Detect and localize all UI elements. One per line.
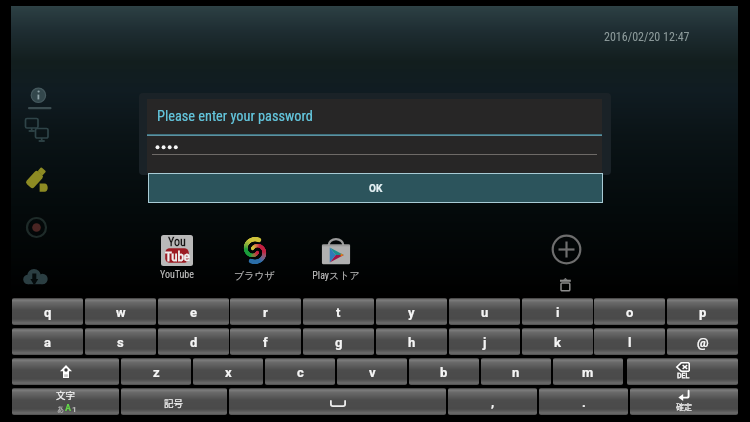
button[interactable]: i [522, 298, 593, 325]
staticText: p [699, 305, 707, 320]
staticText: @ [697, 335, 709, 350]
button[interactable]: v [337, 358, 407, 385]
staticText: h [408, 335, 416, 350]
staticText: , [491, 395, 495, 410]
staticText: c [297, 365, 304, 380]
staticText: 記号 [164, 396, 184, 410]
button[interactable]: Add [551, 234, 582, 265]
staticText: 2016/02/20 12:47 [604, 30, 690, 44]
button[interactable]: k [522, 328, 593, 355]
button[interactable]: j [449, 328, 520, 355]
button[interactable]: Network [24, 117, 52, 143]
button[interactable]: m [553, 358, 623, 385]
button[interactable]: x [193, 358, 263, 385]
button[interactable]: l [594, 328, 665, 355]
button[interactable]: d [158, 328, 229, 355]
staticText: n [512, 365, 520, 380]
button[interactable]: . [539, 388, 628, 415]
button[interactable]: o [594, 298, 665, 325]
button[interactable]: Enter [630, 388, 738, 415]
staticText: e [190, 305, 198, 320]
button[interactable]: ブラウザ [218, 231, 290, 285]
button[interactable]: @ [667, 328, 738, 355]
button[interactable]: t [303, 298, 374, 325]
button[interactable]: , [448, 388, 537, 415]
staticText: i [556, 305, 560, 320]
button[interactable]: p [667, 298, 738, 325]
button[interactable]: s [85, 328, 156, 355]
staticText: 文字 [56, 388, 76, 402]
staticText: x [225, 365, 232, 380]
button[interactable]: w [85, 298, 156, 325]
button[interactable]: h [376, 328, 447, 355]
staticText: A [65, 403, 72, 414]
button[interactable]: Playストア [300, 231, 372, 285]
staticText: v [369, 365, 376, 380]
button[interactable]: u [449, 298, 520, 325]
staticText: d [190, 335, 198, 350]
staticText: YouTube [160, 269, 194, 281]
staticText: . [582, 395, 586, 410]
staticText: u [481, 305, 489, 320]
staticText: t [336, 305, 341, 320]
button[interactable]: r [230, 298, 301, 325]
staticText: Tube [165, 249, 190, 264]
staticText: k [554, 335, 561, 350]
staticText: l [628, 335, 632, 350]
button[interactable]: OK [148, 173, 603, 203]
staticText: g [335, 335, 343, 350]
staticText: w [116, 305, 126, 320]
staticText: a [44, 335, 51, 350]
staticText: 1 [72, 405, 77, 414]
staticText: q [44, 305, 52, 320]
button[interactable]: Delete [627, 358, 738, 385]
staticText: あ [57, 404, 64, 414]
staticText: Please enter your password [157, 108, 313, 125]
button[interactable]: e [158, 298, 229, 325]
staticText: m [582, 365, 594, 380]
button[interactable]: 記号 [121, 388, 227, 415]
button[interactable]: b [409, 358, 479, 385]
staticText: OK [369, 183, 383, 195]
button[interactable]: Delete [558, 276, 573, 293]
staticText: r [263, 305, 268, 320]
button[interactable]: Switch input mode [12, 388, 119, 415]
button[interactable]: You [141, 231, 213, 285]
button[interactable]: Cloud download [22, 267, 52, 291]
staticText: y [408, 305, 415, 320]
staticText: f [263, 335, 268, 350]
staticText: j [483, 335, 487, 350]
button[interactable]: g [303, 328, 374, 355]
button[interactable]: y [376, 298, 447, 325]
button[interactable]: n [481, 358, 551, 385]
staticText: z [153, 365, 160, 380]
staticText: b [440, 365, 448, 380]
button[interactable]: Shift [12, 358, 119, 385]
button[interactable]: z [121, 358, 191, 385]
staticText: 確定 [676, 401, 692, 413]
staticText: DEL [677, 371, 690, 380]
button[interactable]: Record [24, 216, 50, 242]
staticText: ブラウザ [234, 269, 275, 282]
button[interactable]: a [12, 328, 83, 355]
staticText: Playストア [312, 269, 360, 282]
staticText: You [168, 235, 186, 249]
button[interactable]: Information [26, 85, 52, 111]
button[interactable]: q [12, 298, 83, 325]
button[interactable]: USB storage [24, 168, 52, 194]
button[interactable]: c [265, 358, 335, 385]
staticText: s [117, 335, 124, 350]
staticText: o [626, 305, 634, 320]
button[interactable]: Space [229, 388, 446, 415]
button[interactable]: f [230, 328, 301, 355]
